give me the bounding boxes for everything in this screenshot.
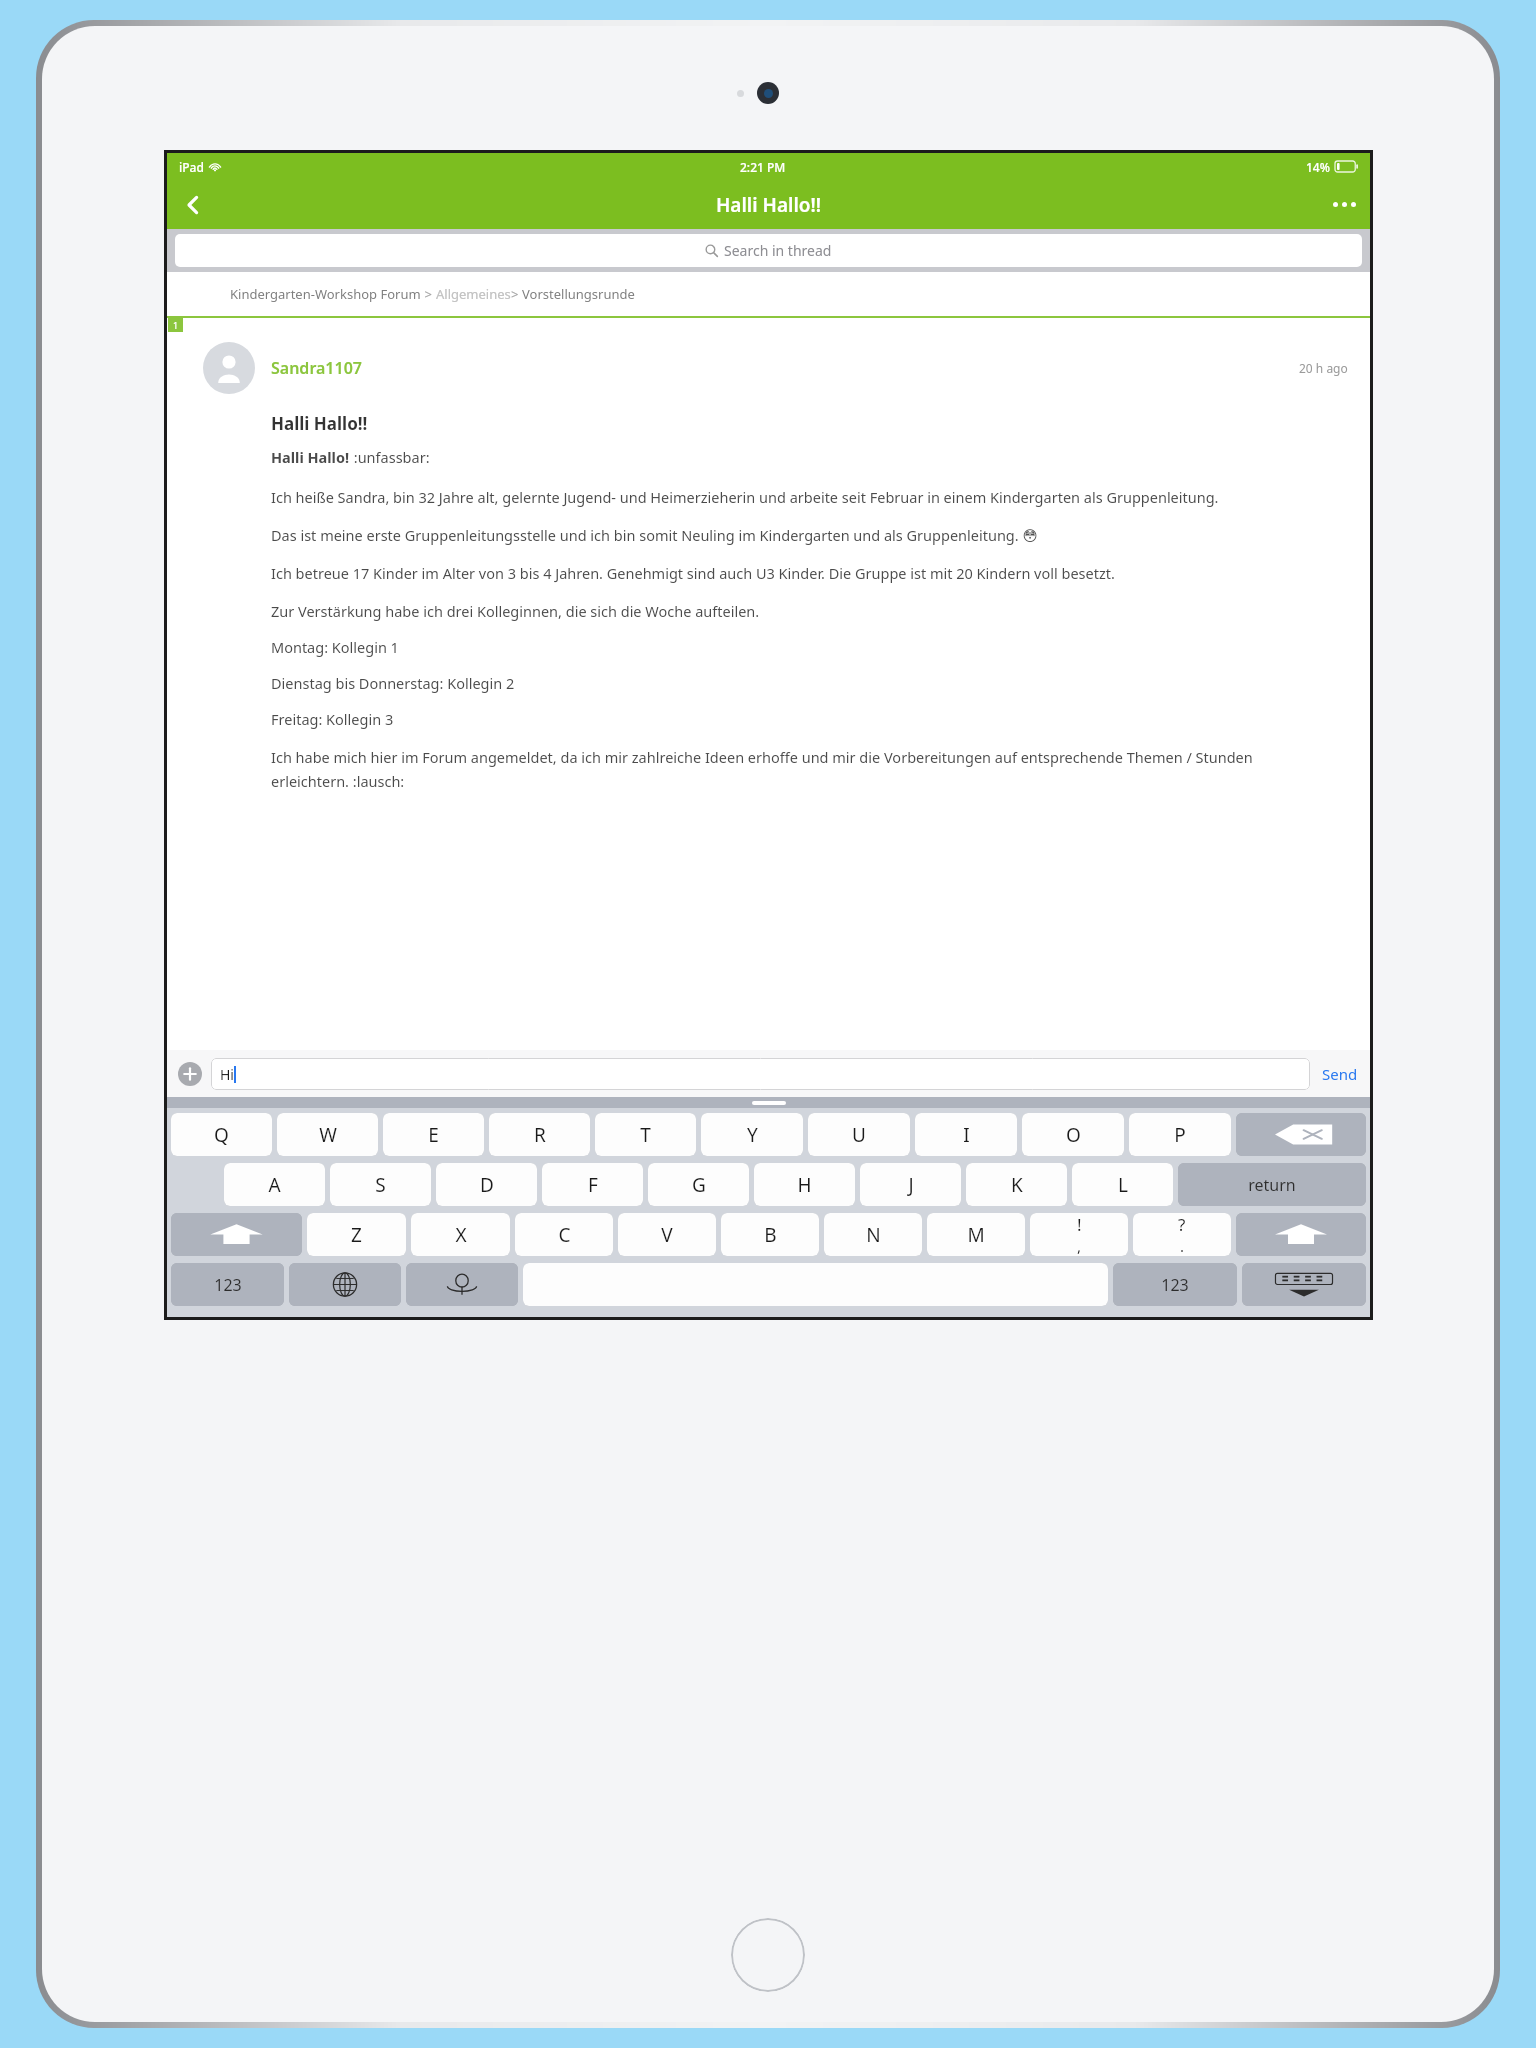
- button[interactable]: J: [860, 1163, 961, 1206]
- button[interactable]: K: [966, 1163, 1067, 1206]
- staticText: O: [1066, 1122, 1081, 1148]
- staticText: .: [1180, 1236, 1185, 1256]
- staticText: Freitag: Kollegin 3: [271, 709, 394, 729]
- staticText: N: [866, 1222, 881, 1248]
- button[interactable]: 123: [1113, 1263, 1237, 1306]
- staticText: I: [963, 1122, 970, 1148]
- staticText: Send: [1322, 1064, 1358, 1084]
- button[interactable]: M: [927, 1213, 1025, 1256]
- button[interactable]: Shift: [171, 1213, 302, 1256]
- staticText: G: [692, 1172, 706, 1198]
- button[interactable]: B: [721, 1213, 819, 1256]
- staticText: return: [1248, 1174, 1296, 1196]
- button[interactable]: W: [277, 1113, 378, 1156]
- staticText: Q: [214, 1122, 229, 1148]
- staticText: Ich habe mich hier im Forum angemeldet, …: [271, 747, 1348, 791]
- button[interactable]: Hi: [211, 1058, 1310, 1090]
- staticText: Vorstellungsrunde: [522, 285, 635, 303]
- button[interactable]: Avatar: [203, 342, 255, 394]
- button[interactable]: Back: [167, 180, 219, 229]
- staticText: !: [1077, 1213, 1082, 1236]
- button[interactable]: H: [754, 1163, 855, 1206]
- button[interactable]: V: [618, 1213, 716, 1256]
- staticText: >: [511, 285, 522, 303]
- button[interactable]: A: [224, 1163, 325, 1206]
- button[interactable]: Backspace: [1236, 1113, 1366, 1156]
- staticText: Zur Verstärkung habe ich drei Kolleginne…: [271, 601, 760, 621]
- staticText: A: [268, 1172, 281, 1198]
- button[interactable]: G: [648, 1163, 749, 1206]
- staticText: K: [1011, 1172, 1023, 1198]
- staticText: E: [428, 1122, 439, 1148]
- staticText: Ich betreue 17 Kinder im Alter von 3 bis…: [271, 563, 1115, 583]
- staticText: M: [967, 1222, 985, 1248]
- button[interactable]: Kindergarten-Workshop Forum: [230, 285, 421, 303]
- staticText: R: [534, 1122, 546, 1148]
- button[interactable]: Dictation: [406, 1263, 518, 1306]
- button[interactable]: Search in thread: [175, 234, 1362, 267]
- staticText: Halli Hallo!!: [271, 412, 368, 435]
- button[interactable]: O: [1022, 1113, 1124, 1156]
- staticText: H: [797, 1172, 812, 1198]
- button[interactable]: N: [824, 1213, 922, 1256]
- staticText: :unfassbar:: [350, 447, 430, 467]
- staticText: Dienstag bis Donnerstag: Kollegin 2: [271, 673, 515, 693]
- button[interactable]: Allgemeines: [436, 285, 511, 303]
- button[interactable]: Switch keyboard: [289, 1263, 401, 1306]
- button[interactable]: P: [1129, 1113, 1231, 1156]
- button[interactable]: Q: [171, 1113, 272, 1156]
- button[interactable]: L: [1072, 1163, 1173, 1206]
- button[interactable]: S: [330, 1163, 431, 1206]
- button[interactable]: Sandra1107: [271, 357, 362, 379]
- button[interactable]: Shift: [1236, 1213, 1366, 1256]
- staticText: 14%: [1306, 159, 1330, 175]
- button[interactable]: X: [411, 1213, 510, 1256]
- button[interactable]: R: [489, 1113, 590, 1156]
- button[interactable]: T: [595, 1113, 696, 1156]
- button[interactable]: Hide keyboard: [1242, 1263, 1366, 1306]
- button[interactable]: U: [808, 1113, 910, 1156]
- staticText: V: [661, 1222, 673, 1248]
- staticText: Y: [747, 1122, 758, 1148]
- button[interactable]: Z: [307, 1213, 406, 1256]
- staticText: S: [375, 1172, 386, 1198]
- staticText: C: [558, 1222, 571, 1248]
- button[interactable]: Add attachment: [177, 1061, 203, 1087]
- staticText: 123: [214, 1274, 242, 1296]
- button[interactable]: I: [915, 1113, 1017, 1156]
- staticText: X: [455, 1222, 467, 1248]
- staticText: Halli Hallo!: [271, 447, 350, 467]
- button[interactable]: Y: [701, 1113, 803, 1156]
- button[interactable]: !: [1030, 1213, 1128, 1256]
- staticText: ?: [1178, 1213, 1186, 1236]
- staticText: L: [1118, 1172, 1128, 1198]
- staticText: Montag: Kollegin 1: [271, 637, 399, 657]
- staticText: Halli Hallo!!: [716, 192, 822, 218]
- staticText: J: [908, 1172, 914, 1198]
- staticText: P: [1174, 1122, 1186, 1148]
- staticText: B: [764, 1222, 777, 1248]
- staticText: Z: [351, 1222, 362, 1248]
- button[interactable]: Send: [1320, 1064, 1360, 1084]
- staticText: Search in thread: [724, 241, 832, 260]
- staticText: Hi: [220, 1065, 234, 1084]
- staticText: D: [480, 1172, 494, 1198]
- button[interactable]: ?: [1133, 1213, 1231, 1256]
- staticText: 2:21 PM: [740, 159, 786, 175]
- staticText: 1: [173, 319, 179, 331]
- staticText: >: [421, 285, 436, 303]
- button[interactable]: F: [542, 1163, 643, 1206]
- staticText: U: [852, 1122, 866, 1148]
- button[interactable]: return: [1178, 1163, 1366, 1206]
- button[interactable]: E: [383, 1113, 484, 1156]
- staticText: F: [588, 1172, 598, 1198]
- staticText: ,: [1077, 1236, 1082, 1256]
- button[interactable]: D: [436, 1163, 537, 1206]
- button[interactable]: 123: [171, 1263, 284, 1306]
- button[interactable]: More options: [1318, 180, 1370, 229]
- staticText: 123: [1161, 1274, 1189, 1296]
- staticText: Das ist meine erste Gruppenleitungsstell…: [271, 525, 1038, 545]
- button[interactable]: C: [515, 1213, 613, 1256]
- staticText: Ich heiße Sandra, bin 32 Jahre alt, gele…: [271, 487, 1219, 507]
